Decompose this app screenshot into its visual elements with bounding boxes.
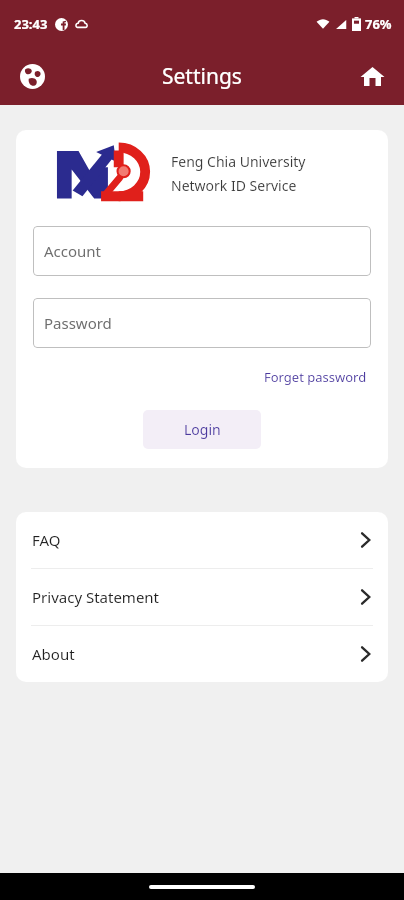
staticText: 23:43	[14, 15, 48, 33]
button[interactable]: Account	[33, 226, 371, 276]
staticText: Account	[44, 241, 102, 261]
staticText: FAQ	[32, 530, 61, 550]
staticText: About	[32, 644, 75, 664]
button[interactable]: Change language	[10, 54, 54, 98]
staticText: Login	[184, 420, 221, 439]
staticText: Forget password	[264, 368, 367, 386]
staticText: Feng Chia University	[171, 152, 306, 171]
staticText: Network ID Service	[171, 176, 297, 195]
button[interactable]: Login	[143, 410, 261, 449]
button[interactable]: FAQ	[16, 512, 388, 568]
staticText: Password	[44, 313, 112, 333]
button[interactable]: About	[16, 626, 388, 682]
staticText: Settings	[162, 62, 242, 91]
button[interactable]: Home	[350, 54, 394, 98]
button[interactable]: Password	[33, 298, 371, 348]
button[interactable]: Forget password	[260, 365, 371, 389]
button[interactable]: Privacy Statement	[16, 569, 388, 625]
staticText: 76%	[365, 15, 392, 33]
staticText: Privacy Statement	[32, 587, 160, 607]
